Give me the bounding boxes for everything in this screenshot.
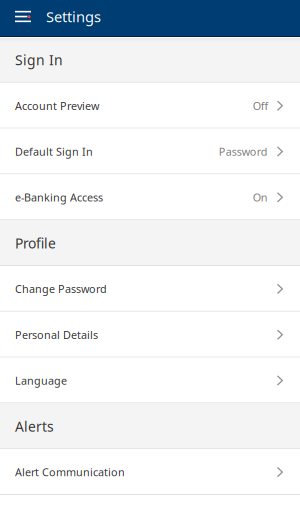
staticText: Alert Communication xyxy=(15,465,125,479)
staticText: On xyxy=(253,190,268,205)
button[interactable]: Change Password xyxy=(0,266,300,312)
staticText: Password xyxy=(219,144,268,159)
button[interactable]: Account Preview xyxy=(0,83,300,129)
staticText: Account Preview xyxy=(15,98,99,113)
staticText: Off xyxy=(253,98,268,113)
staticText: Alerts xyxy=(15,417,54,436)
staticText: Language xyxy=(15,373,67,388)
button[interactable]: e-Banking Access xyxy=(0,174,300,220)
staticText: Sign In xyxy=(15,50,63,69)
button[interactable]: Personal Details xyxy=(0,312,300,358)
staticText: e-Banking Access xyxy=(15,190,103,205)
staticText: Default Sign In xyxy=(15,144,93,159)
button[interactable]: Alert Communication xyxy=(0,449,300,495)
button[interactable]: Language xyxy=(0,358,300,403)
button[interactable]: Default Sign In xyxy=(0,129,300,174)
staticText: Settings xyxy=(46,6,101,26)
staticText: Change Password xyxy=(15,281,107,296)
button[interactable]: Menu xyxy=(0,0,46,33)
staticText: Personal Details xyxy=(15,327,98,342)
staticText: Profile xyxy=(15,234,56,253)
